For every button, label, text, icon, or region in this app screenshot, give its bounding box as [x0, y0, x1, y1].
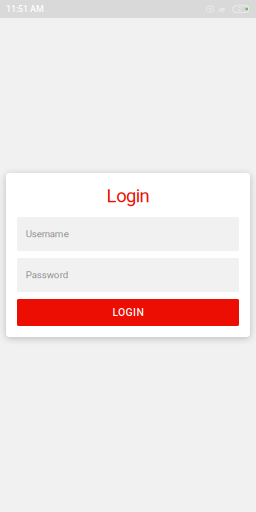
- staticText: Password: [26, 269, 68, 281]
- staticText: 2: [238, 6, 241, 12]
- button[interactable]: Username: [17, 217, 239, 251]
- staticText: 11:51 AM: [6, 4, 44, 14]
- button[interactable]: LOGIN: [17, 299, 239, 326]
- staticText: Login: [107, 185, 149, 207]
- button[interactable]: Password: [17, 258, 239, 292]
- staticText: LOGIN: [113, 306, 143, 319]
- staticText: Username: [26, 228, 69, 240]
